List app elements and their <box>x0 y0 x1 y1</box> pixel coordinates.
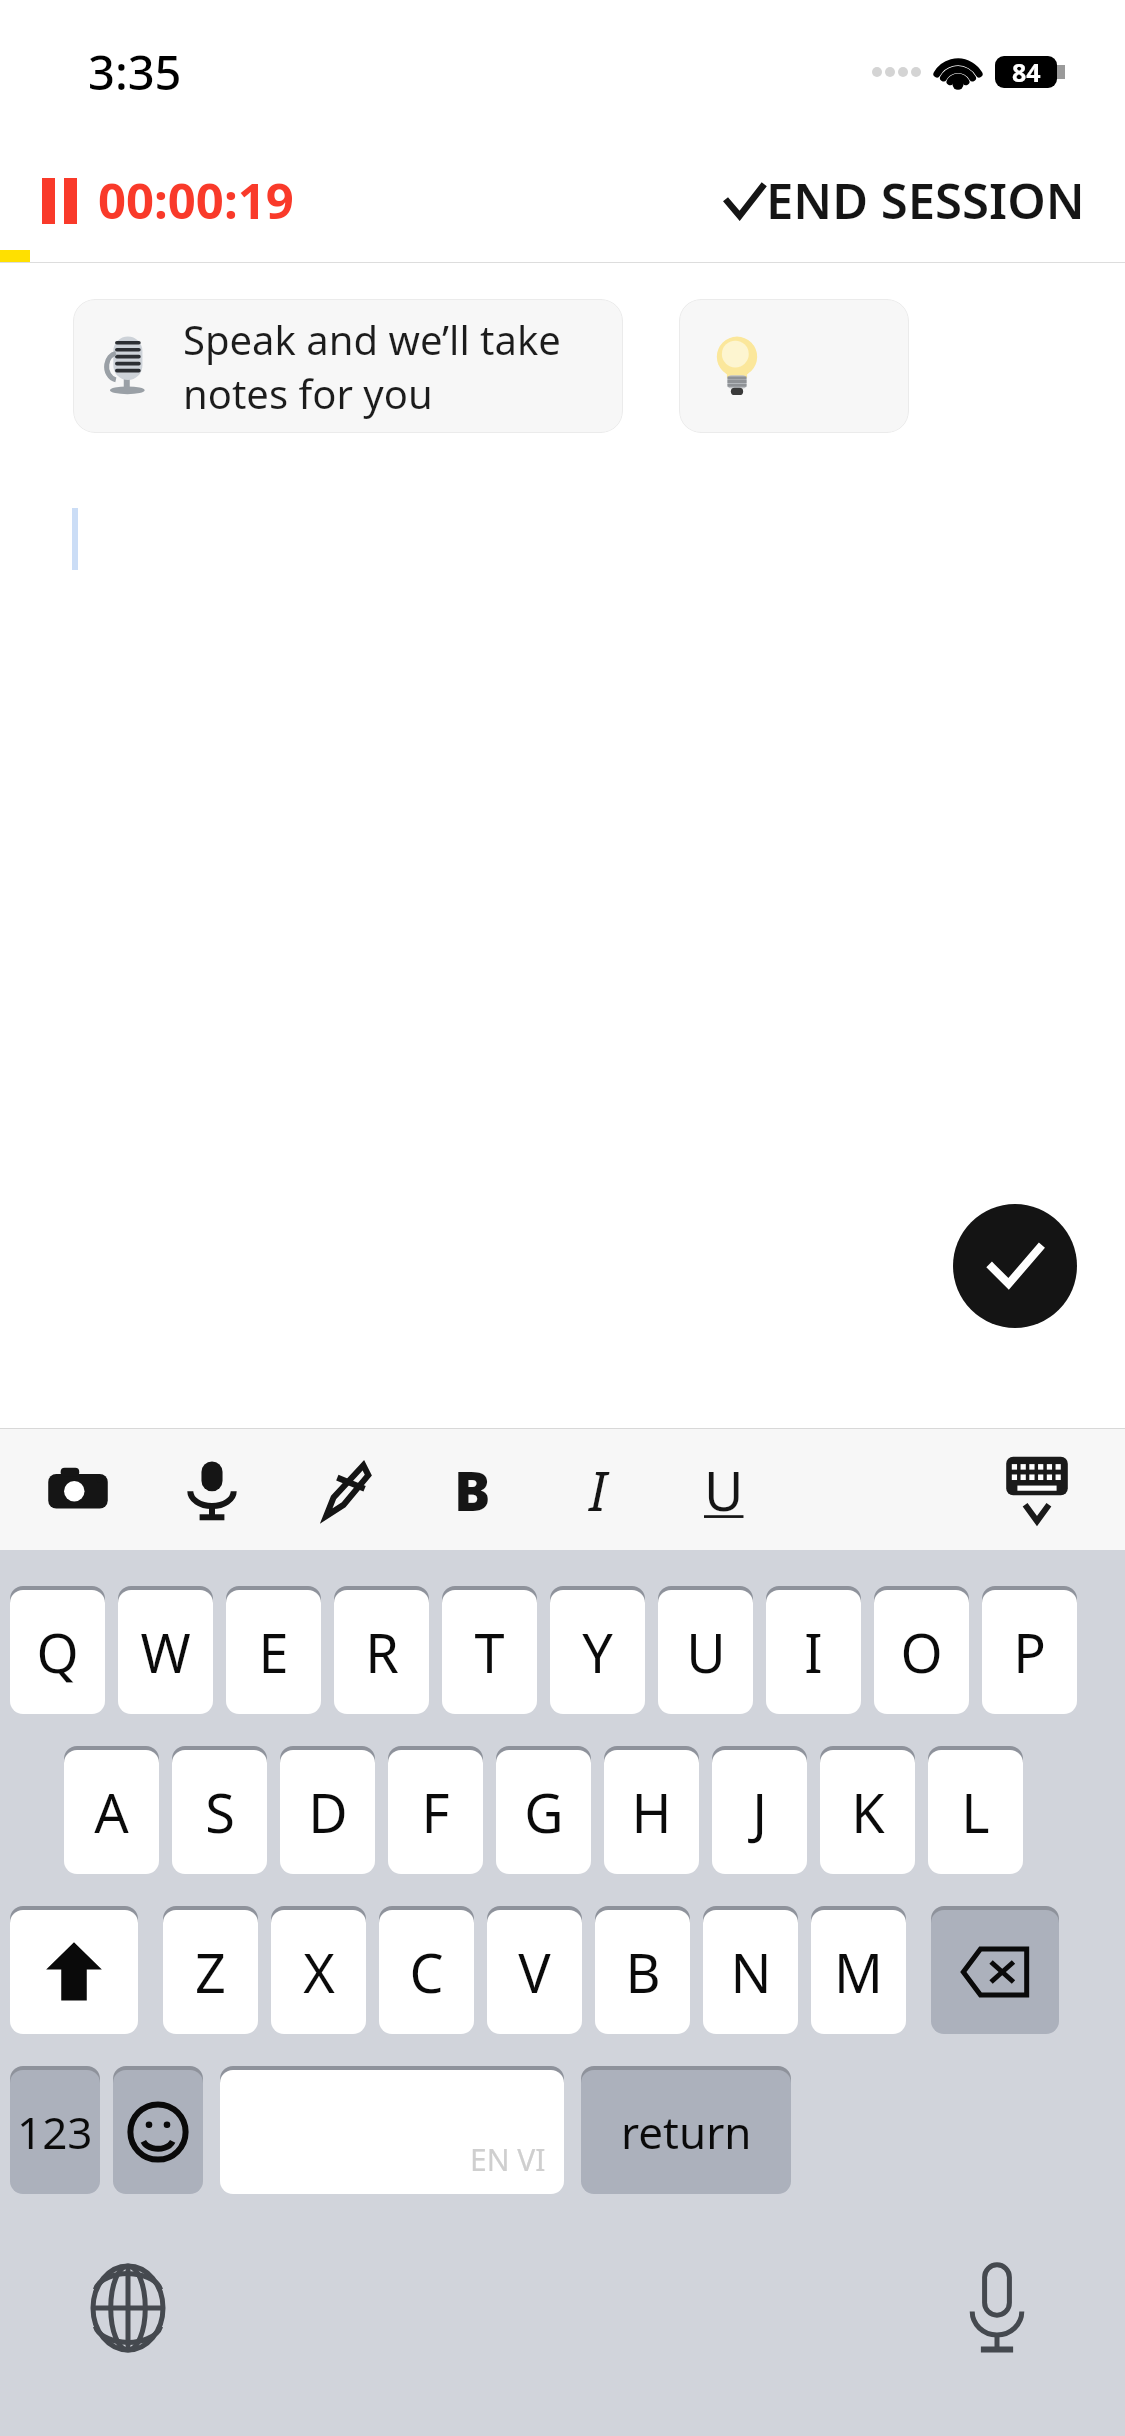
button[interactable]: R <box>334 1586 429 1714</box>
button[interactable]: E <box>226 1586 321 1714</box>
staticText: B <box>454 1453 491 1527</box>
staticText: U <box>686 1615 726 1689</box>
button[interactable]: K <box>820 1746 915 1874</box>
staticText: Y <box>582 1615 613 1689</box>
staticText: C <box>409 1935 444 2009</box>
button[interactable]: Change keyboard <box>78 2258 178 2358</box>
staticText: I <box>804 1615 823 1689</box>
button[interactable]: I <box>766 1586 861 1714</box>
button[interactable]: B <box>434 1452 510 1528</box>
button[interactable]: P <box>982 1586 1077 1714</box>
button[interactable]: Highlight <box>308 1452 384 1528</box>
button[interactable]: T <box>442 1586 537 1714</box>
button[interactable]: D <box>280 1746 375 1874</box>
button[interactable]: Emoji <box>113 2066 203 2194</box>
staticText: EN VI <box>470 2139 546 2180</box>
button[interactable]: Space <box>220 2066 564 2194</box>
button[interactable]: W <box>118 1586 213 1714</box>
staticText: Speak and we’ll take notes for you <box>183 312 623 420</box>
button[interactable]: F <box>388 1746 483 1874</box>
staticText: 84 <box>1012 55 1041 89</box>
button[interactable]: V <box>487 1906 582 2034</box>
button[interactable]: A <box>64 1746 159 1874</box>
button[interactable]: S <box>172 1746 267 1874</box>
staticText: D <box>308 1775 348 1849</box>
button[interactable]: Return <box>581 2066 791 2194</box>
staticText: R <box>365 1615 399 1689</box>
staticText: L <box>961 1775 990 1849</box>
button[interactable]: Shift <box>10 1906 138 2034</box>
staticText: U <box>704 1453 744 1527</box>
staticText: P <box>1013 1615 1046 1689</box>
button[interactable]: O <box>874 1586 969 1714</box>
staticText: H <box>631 1775 672 1849</box>
staticText: END SESSION <box>766 167 1085 234</box>
staticText: O <box>900 1615 943 1689</box>
staticText: return <box>621 2102 752 2162</box>
staticText: B <box>625 1935 661 2009</box>
button[interactable]: END SESSION <box>722 167 1085 234</box>
button[interactable]: H <box>604 1746 699 1874</box>
button[interactable]: Voice <box>174 1452 250 1528</box>
staticText: M <box>834 1935 883 2009</box>
staticText: W <box>140 1615 191 1689</box>
staticText: 00:00:19 <box>98 167 294 234</box>
button[interactable]: Confirm <box>953 1204 1077 1328</box>
button[interactable]: B <box>595 1906 690 2034</box>
button[interactable]: G <box>496 1746 591 1874</box>
button[interactable]: I <box>560 1452 636 1528</box>
staticText: 123 <box>17 2102 93 2162</box>
button[interactable]: Delete <box>931 1906 1059 2034</box>
button[interactable]: U <box>686 1452 762 1528</box>
button[interactable]: Speak and we’ll take notes for you <box>73 299 623 433</box>
button[interactable]: L <box>928 1746 1023 1874</box>
button[interactable]: M <box>811 1906 906 2034</box>
staticText: G <box>524 1775 564 1849</box>
staticText: K <box>851 1775 885 1849</box>
button[interactable]: X <box>271 1906 366 2034</box>
button[interactable]: N <box>703 1906 798 2034</box>
staticText: J <box>752 1775 767 1849</box>
button[interactable]: Camera <box>40 1452 116 1528</box>
staticText: 3:35 <box>88 40 182 104</box>
button[interactable]: Dictate <box>947 2258 1047 2358</box>
staticText: Z <box>195 1935 226 2009</box>
staticText: X <box>303 1935 335 2009</box>
button[interactable]: Z <box>163 1906 258 2034</box>
button[interactable]: Y <box>550 1586 645 1714</box>
staticText: F <box>421 1775 450 1849</box>
staticText: S <box>205 1775 235 1849</box>
button[interactable]: U <box>658 1586 753 1714</box>
button[interactable]: Q <box>10 1586 105 1714</box>
staticText: T <box>474 1615 505 1689</box>
button[interactable]: J <box>712 1746 807 1874</box>
staticText: V <box>518 1935 551 2009</box>
button[interactable]: 00:00:19 <box>40 167 306 234</box>
button[interactable] <box>679 299 909 433</box>
staticText: I <box>589 1453 607 1527</box>
staticText: E <box>258 1615 289 1689</box>
staticText: Q <box>36 1615 79 1689</box>
button[interactable]: Hide keyboard <box>997 1450 1077 1530</box>
button[interactable]: C <box>379 1906 474 2034</box>
button[interactable]: 123 <box>10 2066 100 2194</box>
staticText: A <box>94 1775 129 1849</box>
staticText: N <box>730 1935 772 2009</box>
